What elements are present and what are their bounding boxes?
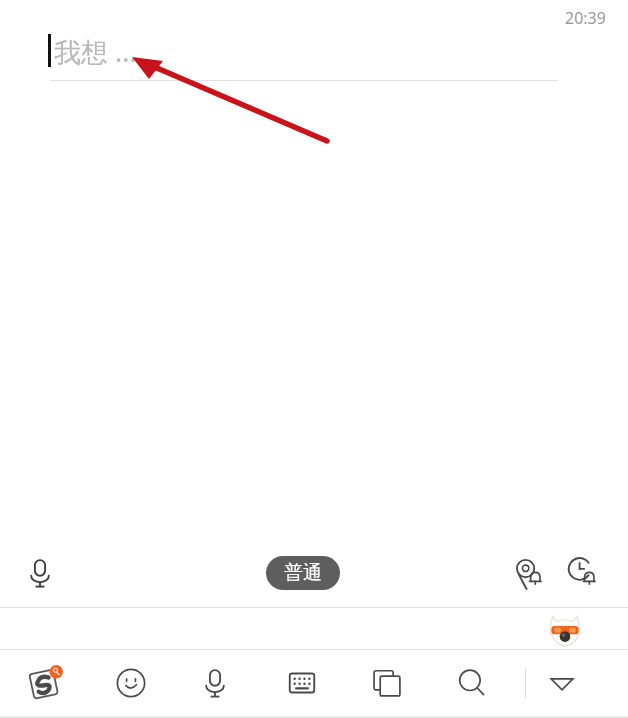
button[interactable]: Emoji bbox=[104, 650, 158, 716]
staticText: 我想 ... bbox=[54, 33, 137, 70]
button[interactable]: Voice bbox=[188, 650, 242, 716]
button[interactable]: Time reminder bbox=[556, 546, 610, 600]
button[interactable]: 我想 ... bbox=[0, 0, 628, 92]
staticText: 普通 bbox=[284, 561, 322, 585]
staticText: 20:39 bbox=[565, 7, 606, 29]
button[interactable]: Assistant bbox=[546, 610, 584, 648]
button[interactable]: Search bbox=[445, 650, 499, 716]
button[interactable]: Sogou input settings bbox=[18, 650, 72, 716]
button[interactable]: Hide keyboard bbox=[535, 650, 589, 716]
button[interactable]: Location reminder bbox=[502, 546, 556, 600]
button[interactable]: Voice input bbox=[14, 547, 66, 599]
button[interactable]: Translate bbox=[360, 650, 414, 716]
button[interactable]: Keyboard bbox=[275, 650, 329, 716]
button[interactable]: 普通 bbox=[266, 556, 340, 590]
